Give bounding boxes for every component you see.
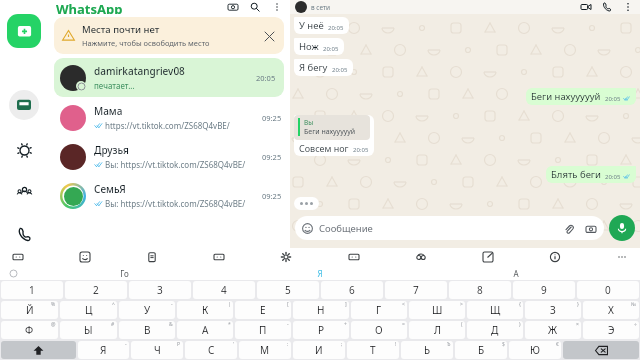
button[interactable]: А	[177, 321, 233, 339]
button[interactable]: Keyboard mode	[346, 249, 362, 265]
button[interactable]: С	[185, 341, 237, 359]
button[interactable]: 8	[449, 281, 511, 299]
button[interactable]: У неё	[294, 17, 349, 34]
button[interactable]: Я бегу	[294, 59, 353, 76]
button[interactable]: Camera	[584, 222, 597, 235]
button[interactable]: Ф	[1, 321, 58, 339]
button[interactable]: Settings	[278, 249, 294, 265]
button[interactable]: Shift	[1, 341, 76, 359]
button[interactable]: Ы	[60, 321, 117, 339]
button[interactable]: 3	[129, 281, 191, 299]
button[interactable]: Р	[293, 321, 349, 339]
button[interactable]: Attach	[562, 222, 575, 235]
button[interactable]: Clipboard	[144, 249, 160, 265]
staticText: Я	[317, 268, 323, 279]
staticText: О	[375, 323, 383, 337]
button[interactable]: У	[119, 301, 175, 319]
button[interactable]: СемьЯ	[48, 176, 290, 215]
button[interactable]: Ч	[131, 341, 183, 359]
button[interactable]: О	[351, 321, 407, 339]
button[interactable]: Нож	[294, 38, 344, 55]
button[interactable]: 7	[385, 281, 447, 299]
button[interactable]: 6	[321, 281, 383, 299]
button[interactable]: М	[239, 341, 291, 359]
staticText: 09:25	[262, 191, 282, 201]
button[interactable]: Split	[413, 249, 429, 265]
button[interactable]: Г	[351, 301, 407, 319]
button[interactable]: Я	[78, 341, 129, 359]
staticText: Вы: https://vt.tiktok.com/ZS68Q4vBE/	[105, 159, 246, 170]
button[interactable]: Т	[347, 341, 399, 359]
button[interactable]: Щ	[467, 301, 523, 319]
staticText: $	[502, 341, 505, 348]
button[interactable]: Status	[10, 136, 38, 164]
button[interactable]: Блять беги	[546, 166, 636, 183]
button[interactable]: Stickers	[77, 249, 93, 265]
button[interactable]: 4	[193, 281, 255, 299]
button[interactable]: Video call	[579, 0, 593, 14]
button[interactable]: More	[614, 249, 630, 265]
button[interactable]: Chats	[9, 90, 39, 120]
staticText: )	[519, 321, 521, 328]
button[interactable]: Мама	[48, 98, 290, 137]
button[interactable]: З	[525, 301, 581, 319]
button[interactable]: К	[177, 301, 233, 319]
staticText: 8	[477, 283, 483, 297]
staticText: ÷	[634, 321, 637, 328]
staticText: Д	[491, 323, 499, 337]
button[interactable]: Clipboard shortcut	[10, 249, 26, 265]
button[interactable]: 0	[577, 281, 639, 299]
button[interactable]: Я	[222, 266, 418, 280]
button[interactable]: Места почти нет	[54, 17, 284, 54]
button[interactable]: Dismiss	[262, 29, 276, 43]
button[interactable]: Э	[583, 321, 639, 339]
button[interactable]: 2	[65, 281, 127, 299]
button[interactable]: Н	[293, 301, 349, 319]
button[interactable]: Voice call	[600, 0, 614, 14]
staticText: #	[111, 321, 115, 328]
button[interactable]: Ю	[509, 341, 561, 359]
button[interactable]: А	[418, 266, 614, 280]
button[interactable]: Calls	[10, 220, 38, 248]
button[interactable]: Сообщение	[295, 216, 604, 240]
button[interactable]: Ь	[401, 341, 453, 359]
button[interactable]: Х	[583, 301, 639, 319]
button[interactable]: Search	[248, 0, 262, 14]
button[interactable]: Expand	[0, 266, 26, 280]
staticText: 20:05	[256, 73, 276, 83]
button[interactable]: New chat	[7, 14, 41, 48]
button[interactable]: Й	[1, 301, 58, 319]
button[interactable]: Resize	[480, 249, 496, 265]
staticText: Мама	[94, 104, 123, 118]
button[interactable]: В	[119, 321, 175, 339]
button[interactable]: Communities	[10, 178, 38, 206]
button[interactable]: More options	[621, 0, 635, 14]
button[interactable]: Е	[235, 301, 291, 319]
button[interactable]: 9	[513, 281, 575, 299]
button[interactable]: Ж	[525, 321, 581, 339]
button[interactable]: Л	[409, 321, 465, 339]
button[interactable]: П	[235, 321, 291, 339]
button[interactable]: Беги нахуууууй	[526, 88, 636, 105]
staticText: https://vt.tiktok.com/ZS68Q4vBE/	[105, 120, 230, 131]
staticText: 7	[413, 283, 419, 297]
button[interactable]: Ш	[409, 301, 465, 319]
button[interactable]: Ц	[60, 301, 117, 319]
button[interactable]: Го	[26, 266, 222, 280]
button[interactable]: Д	[467, 321, 523, 339]
button[interactable]: 5	[257, 281, 319, 299]
button[interactable]: Translate	[211, 249, 227, 265]
button[interactable]: 1	[1, 281, 63, 299]
button[interactable]: Друзья	[48, 137, 290, 176]
button[interactable]: damirkatangriev08	[54, 58, 284, 97]
button[interactable]: Info	[547, 249, 563, 265]
button[interactable]: Б	[455, 341, 507, 359]
button[interactable]: More options	[270, 0, 284, 14]
button[interactable]: И	[293, 341, 345, 359]
staticText: В	[144, 323, 151, 337]
staticText: Вы	[304, 118, 314, 127]
button[interactable]: Voice message	[609, 215, 635, 241]
staticText: Нажмите, чтобы освободить место	[82, 38, 210, 48]
button[interactable]: Backspace	[563, 341, 639, 359]
button[interactable]: Camera	[226, 0, 240, 14]
